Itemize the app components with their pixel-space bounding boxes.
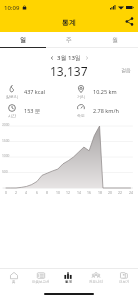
button[interactable]: 거리 — [69, 82, 138, 101]
staticText: 24 — [129, 190, 133, 195]
button[interactable]: Share — [120, 12, 138, 30]
button[interactable]: 시간 — [0, 101, 69, 120]
staticText: 12 — [66, 190, 70, 195]
staticText: 일 — [20, 36, 26, 44]
staticText: 더보기 — [119, 280, 130, 284]
staticText: 거리 — [77, 94, 85, 99]
staticText: 속도 — [77, 113, 85, 118]
staticText: 22 — [118, 190, 122, 195]
staticText: 20 — [108, 190, 112, 195]
button[interactable]: Previous day — [46, 52, 57, 63]
button[interactable]: 통계 — [54, 269, 82, 286]
staticText: 10 — [56, 190, 60, 195]
staticText: 0 — [5, 190, 7, 195]
button[interactable]: 속도 — [69, 101, 138, 120]
staticText: 4 — [25, 190, 27, 195]
staticText: 10.25 km — [93, 88, 117, 95]
staticText: 2 — [15, 190, 17, 195]
staticText: 시간 — [8, 113, 16, 118]
staticText: 통계 — [62, 18, 76, 27]
staticText: 칼로리 — [6, 94, 18, 99]
staticText: 3월 13일 — [57, 54, 81, 62]
button[interactable]: 커뮤니티 — [82, 269, 110, 286]
staticText: 16 — [87, 190, 91, 195]
staticText: 홈 — [12, 280, 16, 284]
staticText: 18 — [98, 190, 102, 195]
staticText: 2000 — [2, 123, 10, 127]
staticText: 13,137 — [50, 63, 88, 77]
staticText: 마음보고서 — [32, 280, 50, 284]
staticText: 1000 — [2, 154, 10, 158]
staticText: 2.78 km/h — [93, 107, 119, 114]
button[interactable]: 마음보고서 — [27, 269, 54, 286]
staticText: 10:09 — [4, 4, 20, 12]
button[interactable]: 홈 — [0, 269, 27, 286]
staticText: 437 kcal — [24, 88, 45, 95]
staticText: 153 분 — [24, 107, 41, 115]
button[interactable]: 더보기 — [110, 269, 138, 286]
staticText: 걸음 — [121, 67, 131, 73]
button[interactable]: 칼로리 — [0, 82, 69, 101]
button[interactable]: 일 — [0, 32, 46, 48]
staticText: 주 — [66, 36, 72, 44]
button[interactable]: Next day — [81, 52, 92, 63]
staticText: 월 — [112, 36, 118, 44]
staticText: 500 — [2, 170, 8, 174]
button[interactable]: 월 — [92, 32, 138, 48]
staticText: 6 — [36, 190, 38, 195]
staticText: 8 — [46, 190, 48, 195]
staticText: 커뮤니티 — [89, 280, 103, 284]
staticText: 통계 — [65, 280, 72, 284]
button[interactable]: 주 — [46, 32, 92, 48]
staticText: 1500 — [2, 139, 10, 143]
staticText: 14 — [77, 190, 81, 195]
